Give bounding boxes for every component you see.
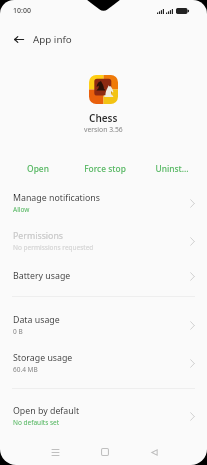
staticText: Uninst… (155, 163, 189, 174)
button[interactable]: Permissions (0, 221, 207, 261)
button[interactable]: Storage usage (0, 344, 207, 382)
staticText: No defaults set (13, 418, 60, 427)
button[interactable]: Open by default (0, 397, 207, 435)
staticText: 0 B (13, 327, 23, 336)
button[interactable]: Manage notifications (0, 184, 207, 222)
staticText: 10:00 (13, 6, 31, 16)
staticText: Battery usage (13, 270, 71, 282)
button[interactable]: Back (8, 29, 29, 50)
staticText: Force stop (84, 163, 126, 174)
button[interactable]: Force stop (71, 159, 138, 177)
button[interactable]: Open (4, 159, 71, 177)
staticText: Chess (89, 111, 118, 125)
button[interactable]: Recent apps (38, 441, 73, 463)
button[interactable]: Back (137, 441, 172, 463)
staticText: Permissions (13, 230, 64, 242)
staticText: Open by default (13, 405, 80, 417)
staticText: Open (27, 163, 49, 174)
staticText: Data usage (13, 314, 60, 326)
button[interactable]: Battery usage (0, 260, 207, 292)
staticText: version 3.56 (84, 125, 123, 134)
staticText: Allow (13, 205, 30, 214)
staticText: App info (33, 33, 72, 46)
staticText: 60.4 MB (13, 365, 38, 374)
staticText: Manage notifications (13, 192, 101, 204)
button[interactable]: Home (87, 441, 122, 463)
staticText: Storage usage (13, 352, 73, 364)
staticText: No permissions requested (13, 243, 94, 252)
button[interactable]: Data usage (0, 306, 207, 344)
button[interactable]: Uninst… (138, 159, 205, 177)
